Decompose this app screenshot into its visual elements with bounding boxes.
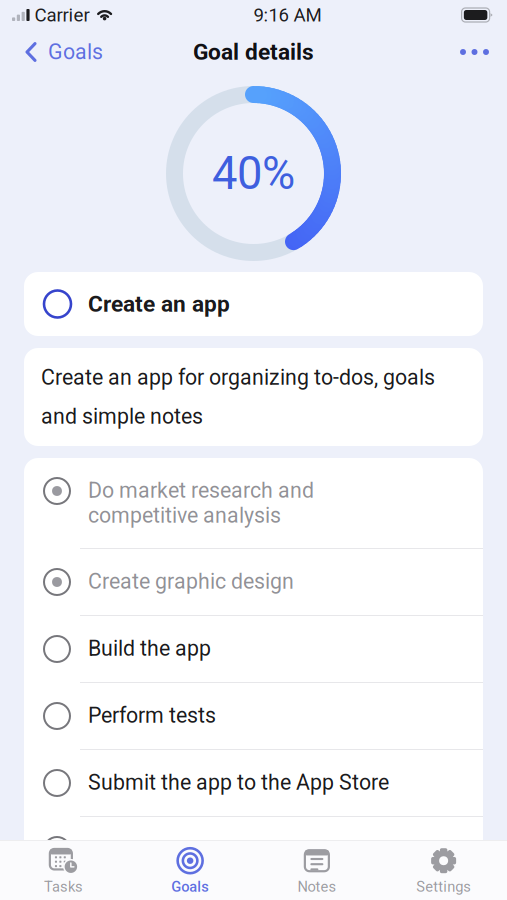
button[interactable]: Goals <box>0 30 117 73</box>
button[interactable]: Launch Store page <box>24 817 483 883</box>
button[interactable]: Build the app <box>24 616 483 683</box>
button[interactable]: Submit the app to the App Store <box>24 750 483 817</box>
button[interactable]: Create graphic design <box>24 549 483 616</box>
staticText: Goals <box>48 39 103 64</box>
staticText: Carrier <box>35 4 90 26</box>
button[interactable]: Create an app <box>24 272 483 336</box>
staticText: Tasks <box>44 878 83 895</box>
staticText: Settings <box>416 878 471 895</box>
button[interactable]: Perform tests <box>24 683 483 750</box>
button[interactable]: More options <box>442 36 507 68</box>
staticText: Notes <box>297 878 336 895</box>
staticText: Create an app <box>88 291 230 317</box>
button[interactable]: Tasks <box>0 837 127 900</box>
staticText: Do market research and competitive analy… <box>88 478 314 528</box>
staticText: 9:16 AM <box>254 4 322 26</box>
button[interactable]: Goals <box>127 837 254 900</box>
staticText: Perform tests <box>88 703 216 728</box>
staticText: 40% <box>212 147 295 200</box>
staticText: Create graphic design <box>88 569 294 594</box>
staticText: Launch Store page <box>88 837 265 862</box>
button[interactable]: Do market research and competitive analy… <box>24 458 483 549</box>
staticText: Submit the app to the App Store <box>88 770 389 795</box>
staticText: Create an app for organizing to-dos, goa… <box>41 365 435 429</box>
button[interactable]: Notes <box>253 837 380 900</box>
button[interactable]: Settings <box>380 837 507 900</box>
staticText: Goal details <box>193 39 314 65</box>
staticText: Build the app <box>88 636 211 661</box>
staticText: Goals <box>171 878 209 895</box>
